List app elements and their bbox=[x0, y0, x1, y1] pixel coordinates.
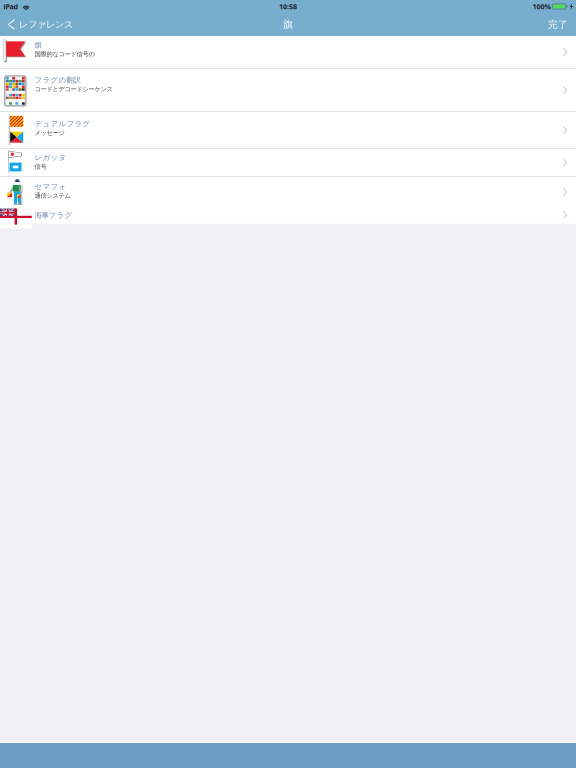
button[interactable]: レファレンス bbox=[0, 13, 81, 36]
staticText: レガッタ bbox=[35, 153, 67, 162]
button[interactable]: デュアルフラグ bbox=[0, 112, 576, 148]
staticText: セマフォ bbox=[35, 182, 67, 191]
staticText: メッセージ bbox=[35, 129, 65, 137]
staticText: 国際的なコード信号の bbox=[35, 50, 95, 58]
staticText: 100% bbox=[532, 2, 550, 11]
staticText: 旗 bbox=[35, 40, 42, 50]
button[interactable]: レガッタ bbox=[0, 149, 576, 176]
button[interactable]: フラグの翻訳 bbox=[0, 69, 576, 111]
staticText: 旗 bbox=[283, 18, 293, 31]
staticText: 完了 bbox=[548, 18, 568, 31]
staticText: フラグの翻訳 bbox=[35, 75, 81, 85]
staticText: レファレンス bbox=[19, 19, 73, 30]
staticText: コードとデコードシーケンス bbox=[35, 85, 113, 93]
staticText: 信号 bbox=[35, 163, 47, 171]
staticText: デュアルフラグ bbox=[35, 119, 91, 128]
button[interactable]: 海事フラグ bbox=[0, 208, 576, 226]
button[interactable]: 完了 bbox=[541, 13, 575, 36]
staticText: iPad bbox=[3, 2, 18, 11]
button[interactable]: 旗 bbox=[0, 36, 576, 68]
staticText: 通信システム bbox=[35, 192, 71, 200]
staticText: 10:58 bbox=[279, 2, 297, 11]
button[interactable]: セマフォ bbox=[0, 177, 576, 207]
staticText: 海事フラグ bbox=[35, 210, 73, 220]
